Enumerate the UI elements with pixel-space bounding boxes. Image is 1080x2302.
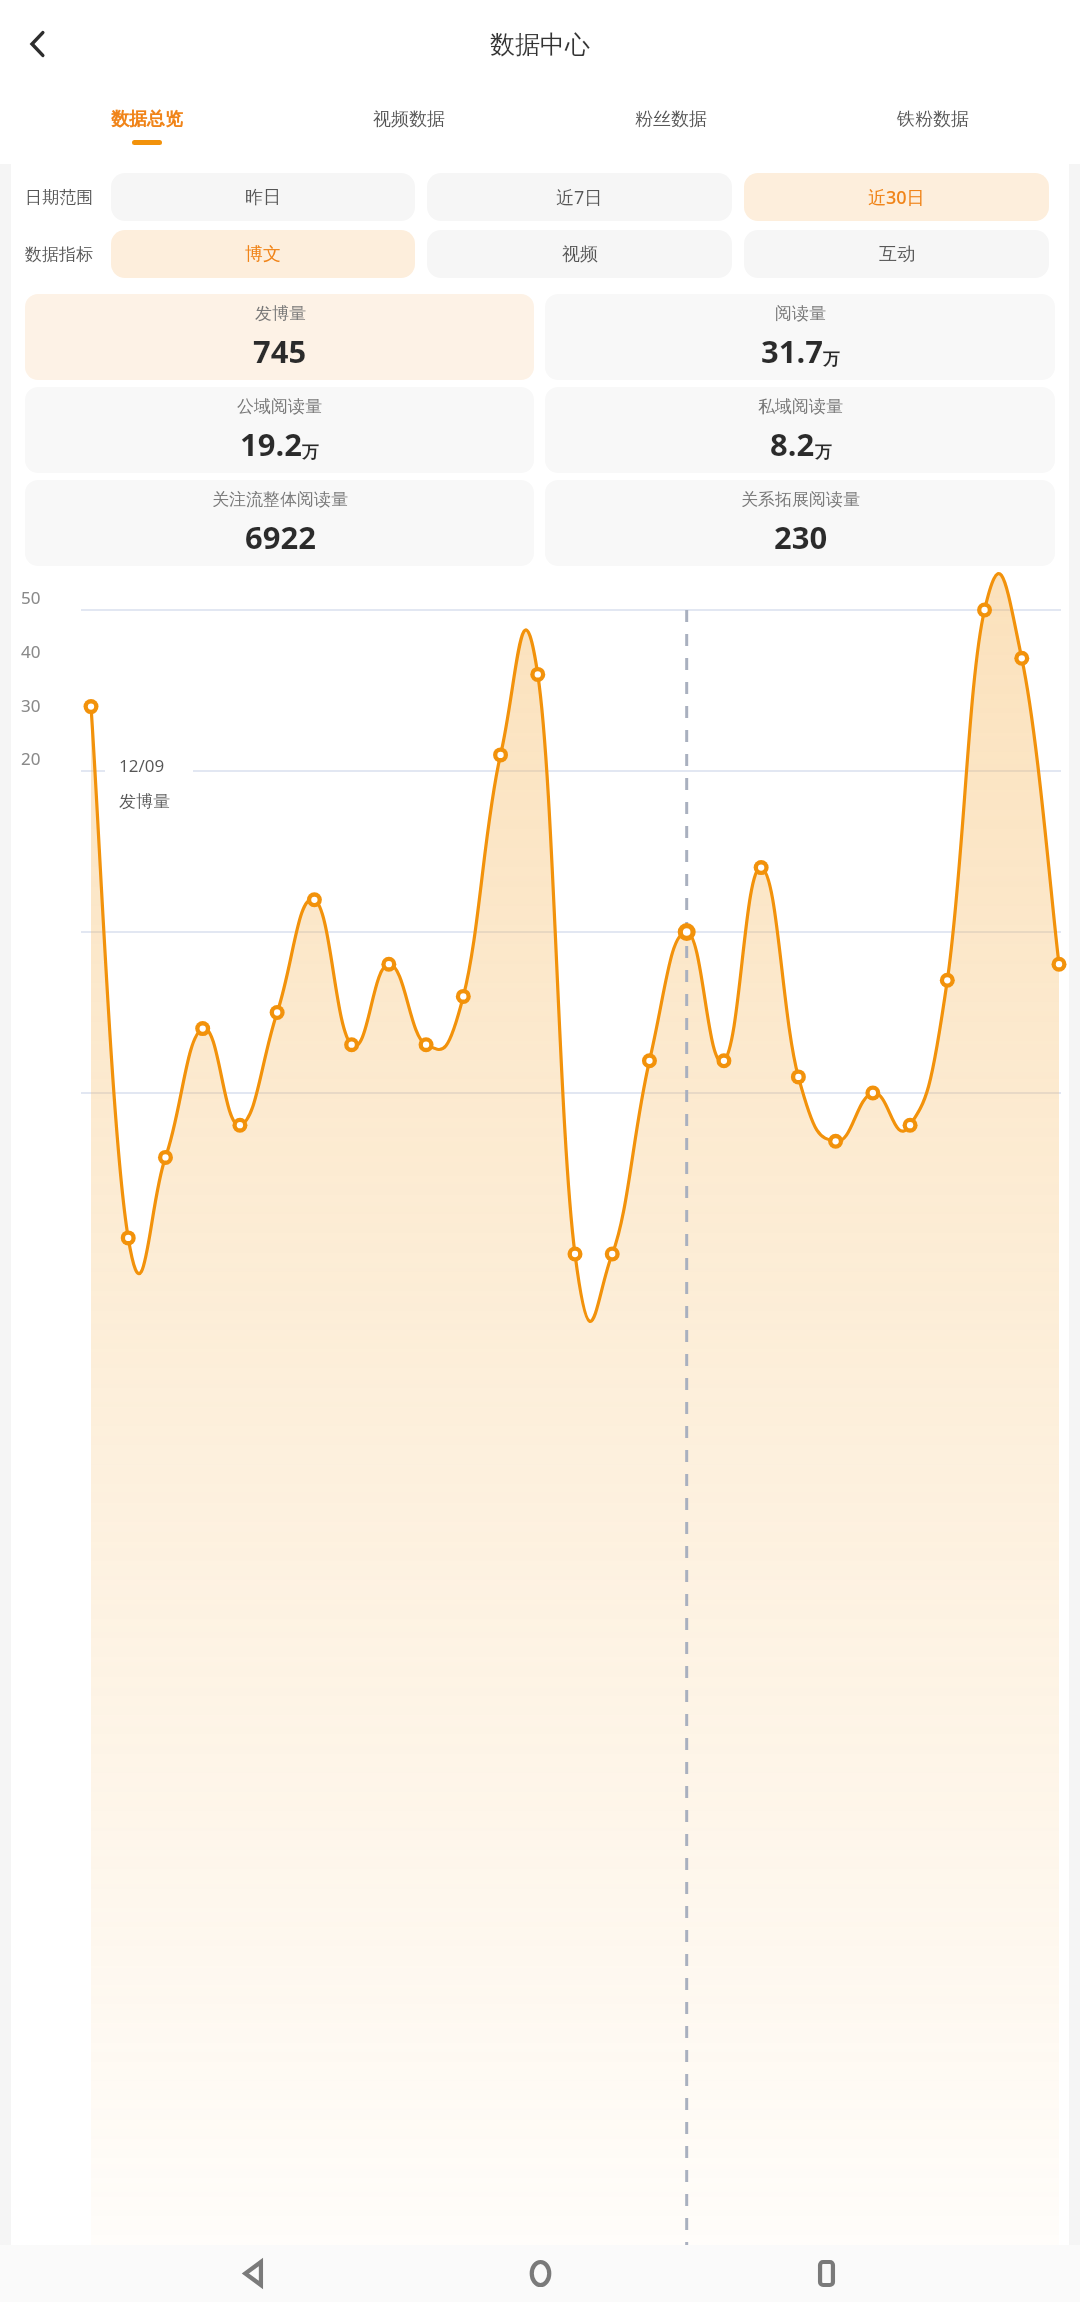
staticText: 视频 [562,243,598,266]
button[interactable]: Back [6,12,70,76]
button[interactable]: 发博量 [25,294,534,380]
staticText: 31.7 [761,330,823,372]
staticText: 近30日 [868,185,925,210]
staticText: 日期范围 [25,187,93,208]
staticText: 关注流整体阅读量 [212,489,348,510]
staticText: 昨日 [245,186,281,209]
button[interactable]: 互动 [744,230,1049,278]
button[interactable]: 视频数据 [278,88,540,164]
staticText: 粉丝数据 [635,108,707,131]
staticText: 12/09 [119,754,165,777]
staticText: 6922 [245,516,316,558]
button[interactable]: 博文 [111,230,415,278]
button[interactable]: 铁粉数据 [802,88,1064,164]
staticText: 视频数据 [373,108,445,131]
staticText: 20 [21,747,41,770]
staticText: 阅读量 [775,303,826,324]
staticText: 745 [253,330,307,372]
button[interactable]: 近30日 [744,173,1049,221]
button[interactable]: 数据总览 [16,88,278,164]
staticText: 关系拓展阅读量 [741,489,860,510]
staticText: 8.2 [770,423,815,465]
staticText: 230 [774,516,828,558]
button[interactable]: 公域阅读量 [25,387,534,473]
button[interactable]: 视频 [427,230,732,278]
staticText: 万 [302,442,319,463]
button[interactable]: 粉丝数据 [540,88,802,164]
staticText: 数据总览 [111,108,183,131]
button[interactable]: 阅读量 [545,294,1055,380]
staticText: 铁粉数据 [897,108,969,131]
staticText: 博文 [245,243,281,266]
staticText: 发博量 [255,303,306,324]
button[interactable]: 私域阅读量 [545,387,1055,473]
staticText: 万 [815,442,832,463]
staticText: 公域阅读量 [237,396,322,417]
staticText: 数据指标 [25,244,93,265]
staticText: 互动 [879,243,915,266]
staticText: 近7日 [556,185,603,210]
staticText: 数据中心 [490,29,590,60]
button[interactable]: 关注流整体阅读量 [25,480,534,566]
staticText: 万 [823,349,840,370]
staticText: 私域阅读量 [758,396,843,417]
staticText: 50 [21,586,41,609]
button[interactable]: Recent apps [794,2245,858,2302]
button[interactable]: 近7日 [427,173,732,221]
button[interactable]: 关系拓展阅读量 [545,480,1055,566]
staticText: 19.2 [240,423,302,465]
staticText: 发博量 30 [119,789,193,818]
staticText: 30 [21,694,41,717]
button[interactable]: Home [508,2245,572,2302]
button[interactable]: 昨日 [111,173,415,221]
staticText: 40 [21,640,41,663]
button[interactable]: Back [222,2245,286,2302]
